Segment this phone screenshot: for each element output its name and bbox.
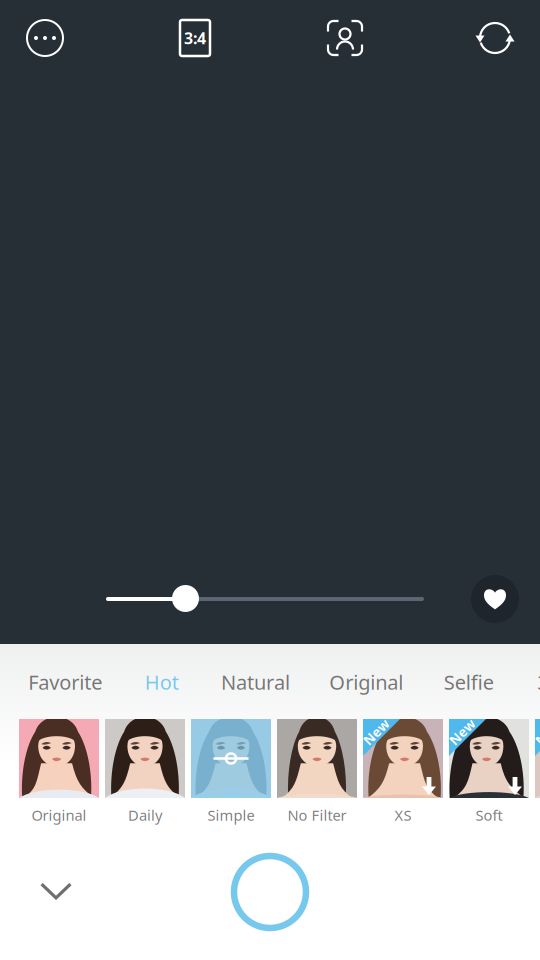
staticText: Soft xyxy=(475,805,502,825)
staticText: New xyxy=(447,723,477,741)
button[interactable]: New xyxy=(535,719,540,832)
staticText: Selfie xyxy=(444,669,494,695)
button[interactable]: Take photo xyxy=(234,856,306,928)
button[interactable]: Switch camera xyxy=(473,16,517,60)
staticText: 3D xyxy=(537,669,540,695)
staticText: New xyxy=(361,723,391,741)
staticText: Simple xyxy=(207,805,254,825)
button[interactable]: New xyxy=(449,719,535,832)
button[interactable]: Favorites xyxy=(471,575,519,623)
button[interactable]: Original xyxy=(318,644,414,720)
button[interactable]: Aspect ratio 3 by 4 xyxy=(173,16,217,60)
button[interactable]: Selfie xyxy=(414,644,523,720)
button[interactable]: Simple xyxy=(191,719,277,832)
button[interactable]: Hot xyxy=(130,644,193,720)
button[interactable]: New xyxy=(363,719,449,832)
button[interactable]: 3D xyxy=(523,644,540,720)
staticText: Natural xyxy=(221,669,290,695)
button[interactable]: Favorite xyxy=(0,644,130,720)
staticText: No Filter xyxy=(287,805,346,825)
button[interactable]: Collapse filter panel xyxy=(28,863,84,919)
button[interactable]: Original xyxy=(19,719,105,832)
staticText: Daily xyxy=(128,805,162,825)
staticText: Original xyxy=(31,805,86,825)
button[interactable]: No Filter xyxy=(277,719,363,832)
button[interactable]: Face detection xyxy=(323,16,367,60)
staticText: XS xyxy=(394,805,411,825)
staticText: Favorite xyxy=(28,669,102,695)
staticText: Hot xyxy=(145,669,179,695)
staticText: 3:4 xyxy=(184,27,206,49)
staticText: New xyxy=(533,723,540,741)
button[interactable]: Natural xyxy=(193,644,318,720)
button[interactable]: Daily xyxy=(105,719,191,832)
staticText: Original xyxy=(329,669,403,695)
button[interactable]: More options xyxy=(23,16,67,60)
